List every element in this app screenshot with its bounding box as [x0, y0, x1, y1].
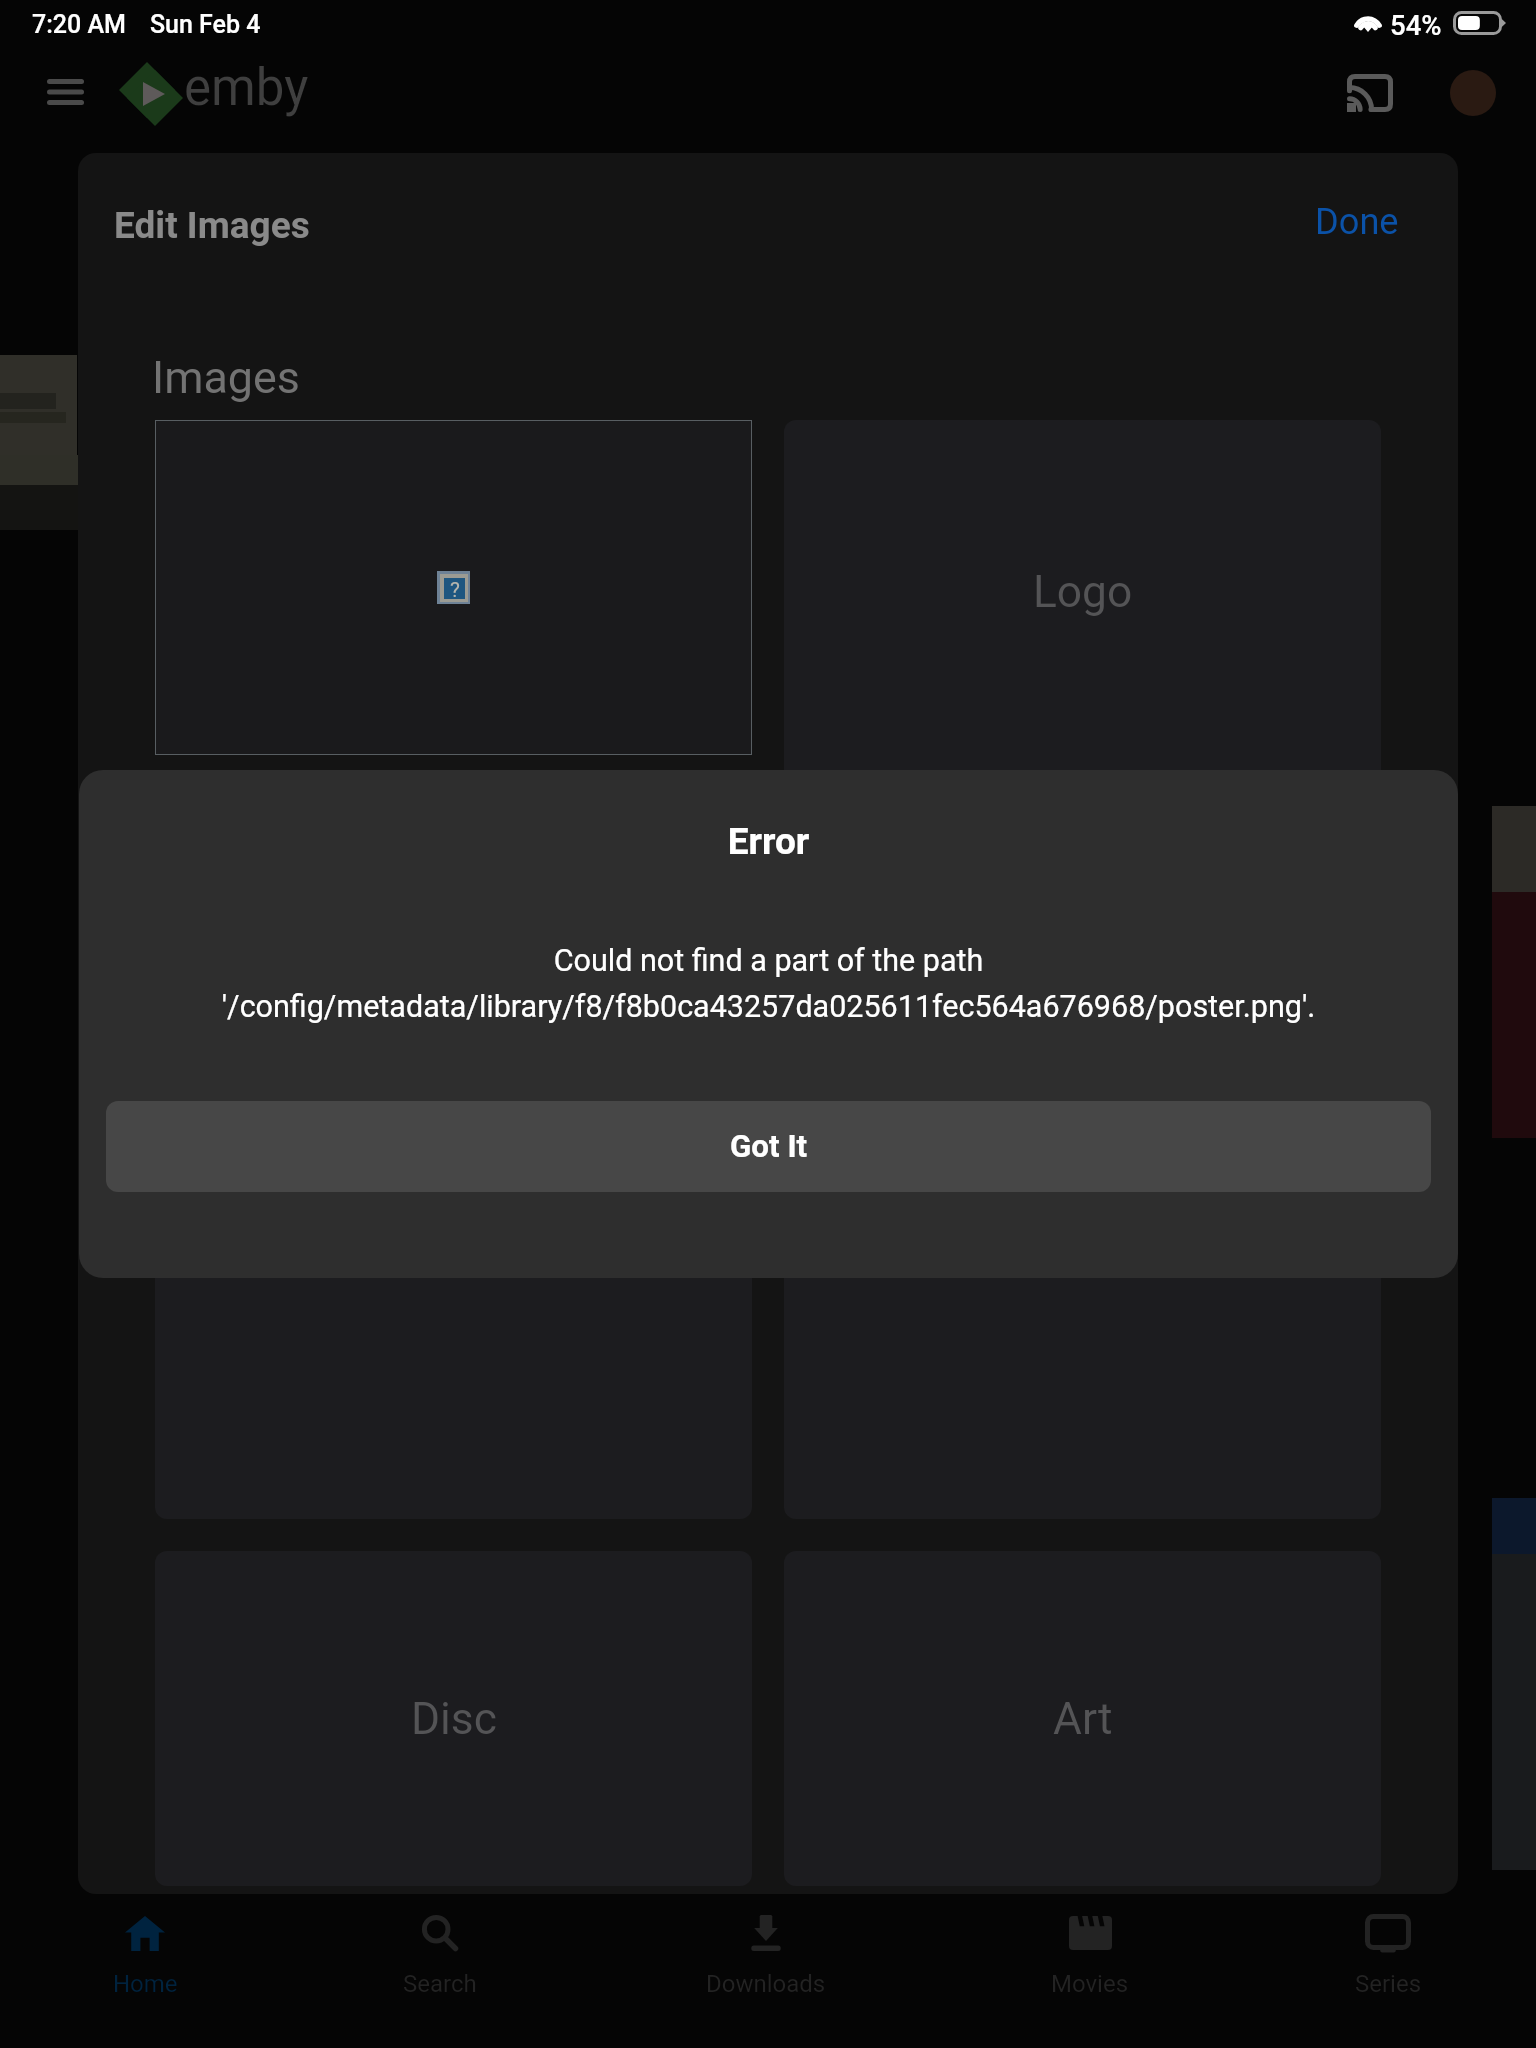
staticText: 7:20 AM: [32, 10, 127, 39]
button[interactable]: Add image: [784, 1121, 1381, 1519]
button[interactable]: Movies: [980, 1898, 1200, 2018]
staticText: Done: [1315, 200, 1399, 242]
staticText: Logo: [1033, 566, 1133, 618]
staticText: Sun Feb 4: [150, 10, 261, 39]
button[interactable]: Got It: [106, 1101, 1431, 1192]
button[interactable]: Menu: [13, 46, 117, 138]
button[interactable]: Logo: [784, 420, 1381, 1089]
staticText: Search: [403, 1970, 477, 1998]
button[interactable]: Add image: [155, 787, 752, 1519]
button[interactable]: Primary image: [155, 420, 752, 755]
staticText: Edit Images: [114, 204, 310, 247]
button[interactable]: Downloads: [656, 1898, 876, 2018]
staticText: Images: [152, 351, 300, 404]
button[interactable]: Done: [1277, 169, 1437, 273]
staticText: Downloads: [706, 1970, 826, 1998]
staticText: emby: [184, 58, 309, 118]
button[interactable]: Series: [1278, 1898, 1498, 2018]
staticText: Art: [1053, 1693, 1113, 1745]
button[interactable]: Disc: [155, 1551, 752, 1886]
staticText: Error: [79, 820, 1458, 863]
staticText: Could not find a part of the path '/conf…: [79, 943, 1458, 1024]
staticText: Disc: [411, 1693, 497, 1745]
staticText: Series: [1355, 1970, 1422, 1998]
button[interactable]: Cast: [1318, 47, 1422, 139]
staticText: 54%: [1390, 9, 1442, 41]
staticText: ?: [450, 578, 460, 599]
button[interactable]: Profile: [1428, 48, 1518, 138]
button[interactable]: Search: [330, 1898, 550, 2018]
button[interactable]: Home: [35, 1898, 255, 2018]
staticText: Got It: [730, 1128, 808, 1165]
staticText: Movies: [1051, 1970, 1129, 1998]
staticText: Home: [113, 1970, 178, 1998]
